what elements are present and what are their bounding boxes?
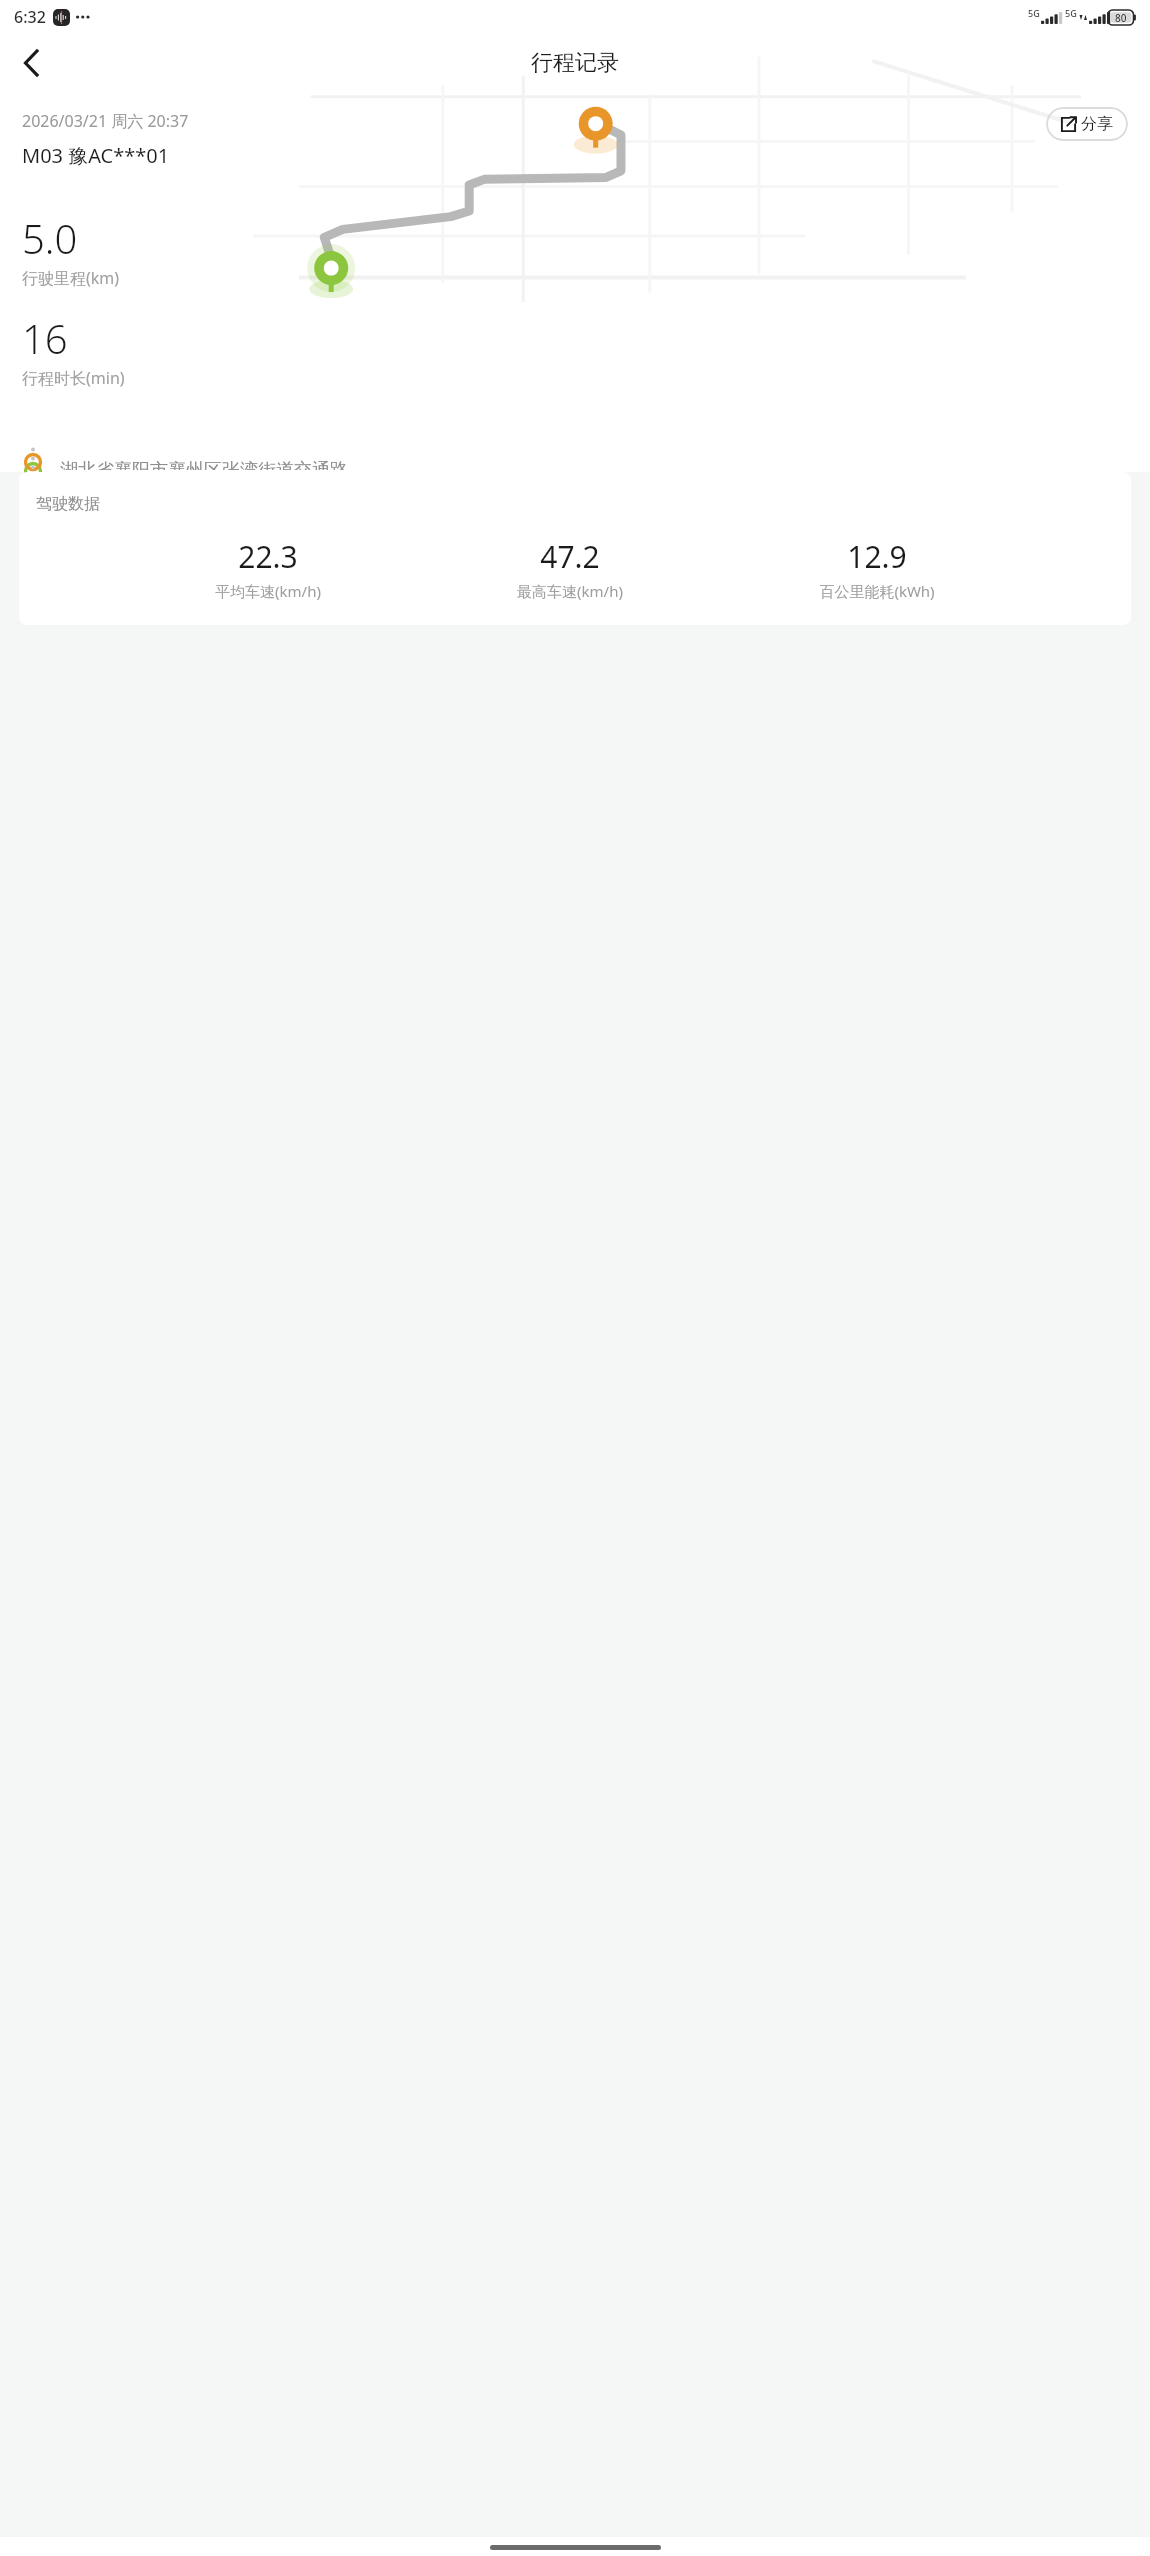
staticText: 22.3 bbox=[238, 536, 298, 577]
staticText: 12.9 bbox=[847, 536, 907, 577]
staticText: 5G bbox=[1065, 7, 1077, 19]
staticText: 2026/03/21 周六 20:37 bbox=[22, 110, 189, 132]
staticText: 5G bbox=[1028, 7, 1040, 19]
staticText: 最高车速(km/h) bbox=[517, 581, 623, 601]
staticText: 驾驶数据 bbox=[36, 494, 100, 514]
staticText: 5.0 bbox=[22, 211, 78, 265]
staticText: M03 豫AC***01 bbox=[22, 142, 170, 169]
staticText: 百公里能耗(kWh) bbox=[819, 581, 935, 601]
button[interactable]: 分享 bbox=[1046, 107, 1128, 141]
button[interactable]: Back bbox=[6, 39, 54, 87]
staticText: 行驶里程(km) bbox=[22, 267, 120, 289]
staticText: 行程记录 bbox=[531, 49, 619, 77]
staticText: 平均车速(km/h) bbox=[215, 581, 321, 601]
staticText: 16 bbox=[22, 311, 68, 365]
staticText: 湖北省襄阳市襄州区张湾街道交通路 bbox=[60, 459, 348, 470]
staticText: 6:32 bbox=[14, 6, 46, 28]
staticText: 80 bbox=[1115, 11, 1127, 25]
staticText: 47.2 bbox=[540, 536, 600, 577]
staticText: 分享 bbox=[1081, 114, 1113, 134]
staticText: 行程时长(min) bbox=[22, 367, 125, 389]
